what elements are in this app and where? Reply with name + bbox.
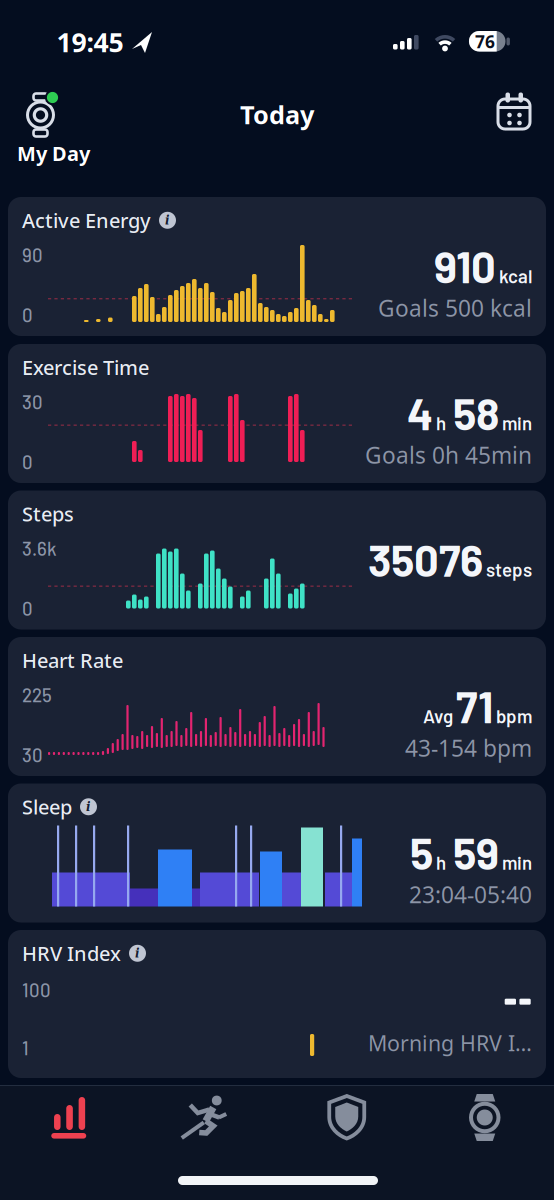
staticText: 35076 xyxy=(368,533,483,585)
staticText: i xyxy=(135,946,140,960)
staticText: i xyxy=(165,213,170,227)
staticText: 0 xyxy=(22,597,33,619)
staticText: 19:45 xyxy=(56,24,123,60)
staticText: Goals 500 kcal xyxy=(378,293,532,323)
staticText: Sleep xyxy=(22,793,72,820)
staticText: steps xyxy=(486,558,532,581)
button[interactable] xyxy=(24,93,62,137)
button[interactable] xyxy=(311,1088,381,1148)
staticText: 5 xyxy=(410,826,433,878)
staticText: Exercise Time xyxy=(22,354,149,381)
staticText: 59 xyxy=(453,826,499,878)
staticText: Today xyxy=(240,98,314,131)
staticText: 100 xyxy=(22,978,51,1001)
staticText: 43-154 bpm xyxy=(405,733,532,763)
staticText: 76 xyxy=(475,30,495,53)
staticText: min xyxy=(502,851,532,874)
staticText: 1 xyxy=(22,1036,29,1059)
staticText: i xyxy=(86,800,91,814)
button[interactable] xyxy=(173,1088,243,1148)
staticText: Steps xyxy=(22,500,74,527)
staticText: 0 xyxy=(22,450,33,473)
staticText: 30 xyxy=(22,743,43,766)
button[interactable]: HRV Index xyxy=(8,930,546,1078)
button[interactable] xyxy=(450,1088,520,1148)
staticText: 23:04-05:40 xyxy=(409,879,532,909)
staticText: h xyxy=(436,851,450,874)
staticText: Avg xyxy=(423,705,453,727)
button[interactable] xyxy=(34,1088,104,1148)
staticText: 4 xyxy=(407,387,433,439)
staticText: kcal xyxy=(499,265,532,287)
staticText: 30 xyxy=(22,390,43,413)
button[interactable]: Active Energy xyxy=(8,197,546,336)
staticText: Goals 0h 45min xyxy=(365,440,532,470)
button[interactable] xyxy=(496,91,531,136)
staticText: 3.6k xyxy=(22,537,57,559)
staticText: Heart Rate xyxy=(22,647,123,674)
staticText: bpm xyxy=(496,705,532,727)
staticText: HRV Index xyxy=(22,940,121,967)
button[interactable]: Exercise Time xyxy=(8,344,546,483)
staticText: 0 xyxy=(22,303,33,326)
staticText: Morning HRV I… xyxy=(368,1029,532,1057)
button[interactable]: Sleep xyxy=(8,783,546,922)
staticText: Active Energy xyxy=(22,207,151,234)
button[interactable]: Heart Rate xyxy=(8,637,546,776)
staticText: My Day xyxy=(17,140,90,167)
staticText: 71 xyxy=(456,680,493,732)
staticText: h xyxy=(436,412,450,434)
staticText: 225 xyxy=(22,683,52,706)
button[interactable]: Steps xyxy=(8,490,546,629)
staticText: 90 xyxy=(22,243,43,266)
staticText: 910 xyxy=(434,240,496,292)
staticText: min xyxy=(502,412,532,434)
staticText: 58 xyxy=(453,387,499,439)
